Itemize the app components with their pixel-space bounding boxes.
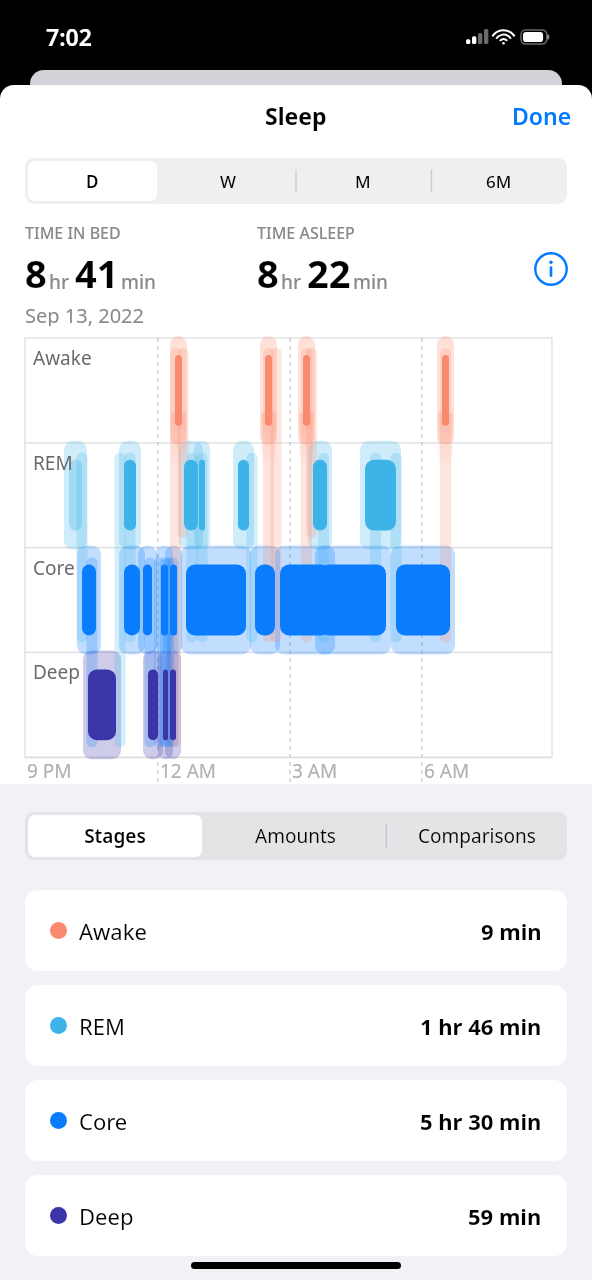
button[interactable]: Stages [28,815,202,857]
staticText: Awake [79,916,147,946]
staticText: 6M [486,170,512,193]
staticText: 9 PM [27,758,72,784]
staticText: hr [49,269,69,295]
button[interactable]: Info [532,250,570,288]
staticText: 5 hr 30 min [420,1106,542,1136]
staticText: TIME ASLEEP [257,222,355,244]
staticText: 1 hr 46 min [420,1011,542,1041]
staticText: Sleep [265,100,327,131]
staticText: Done [512,100,572,131]
button[interactable]: Comparisons [389,815,564,857]
staticText: Amounts [255,823,336,849]
staticText: REM [33,450,73,476]
staticText: 6 AM [424,758,470,784]
button[interactable]: REM [25,985,567,1066]
button[interactable]: W [163,161,292,201]
staticText: Core [79,1106,128,1136]
staticText: Awake [33,345,92,371]
staticText: min [121,269,157,295]
staticText: Core [33,555,75,581]
staticText: Stages [84,823,146,849]
staticText: 41 [75,247,119,299]
staticText: 8 [25,247,47,299]
staticText: Deep [33,659,80,685]
staticText: 8 [257,247,279,299]
staticText: M [355,170,371,193]
staticText: 7:02 [46,21,92,52]
staticText: hr [281,269,301,295]
staticText: TIME IN BED [25,222,121,244]
button[interactable]: Deep [25,1175,567,1256]
staticText: 12 AM [160,758,217,784]
staticText: min [353,269,389,295]
staticText: D [86,170,99,193]
staticText: Deep [79,1201,134,1231]
staticText: 59 min [468,1201,542,1231]
button[interactable]: Awake [25,890,567,971]
staticText: W [220,170,236,193]
button[interactable]: 6M [434,161,564,201]
button[interactable]: Done [492,92,592,139]
button[interactable]: Core [25,1080,567,1161]
staticText: 9 min [481,916,542,946]
staticText: Sep 13, 2022 [25,302,144,326]
button[interactable]: Amounts [208,815,383,857]
staticText: 22 [307,247,351,299]
button[interactable]: M [298,161,428,201]
staticText: REM [79,1011,125,1041]
button[interactable]: D [28,161,157,201]
staticText: 3 AM [292,758,338,784]
staticText: Comparisons [418,823,536,849]
